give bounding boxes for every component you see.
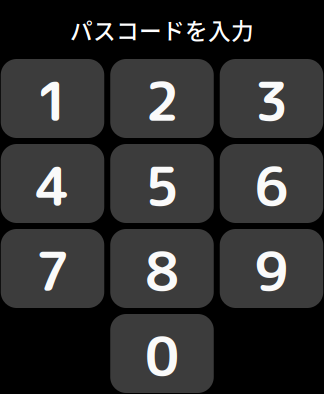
staticText: パスコードを入力 (70, 13, 254, 46)
staticText: 1 (35, 63, 69, 138)
button[interactable]: 0 (110, 314, 214, 393)
staticText: 3 (254, 63, 288, 138)
staticText: 8 (145, 233, 179, 308)
button[interactable]: 8 (110, 229, 214, 308)
button[interactable]: 2 (110, 59, 214, 138)
button[interactable]: 4 (1, 144, 104, 223)
button[interactable]: 5 (110, 144, 214, 223)
staticText: 2 (145, 63, 179, 138)
staticText: 9 (254, 233, 288, 308)
staticText: 5 (145, 148, 179, 223)
staticText: 4 (35, 148, 69, 223)
staticText: 0 (145, 318, 179, 393)
button[interactable]: 3 (220, 59, 323, 138)
button[interactable]: 6 (220, 144, 323, 223)
button[interactable]: 1 (1, 59, 104, 138)
staticText: 7 (35, 233, 69, 308)
button[interactable]: 9 (220, 229, 323, 308)
staticText: 6 (254, 148, 288, 223)
button[interactable]: 7 (1, 229, 104, 308)
